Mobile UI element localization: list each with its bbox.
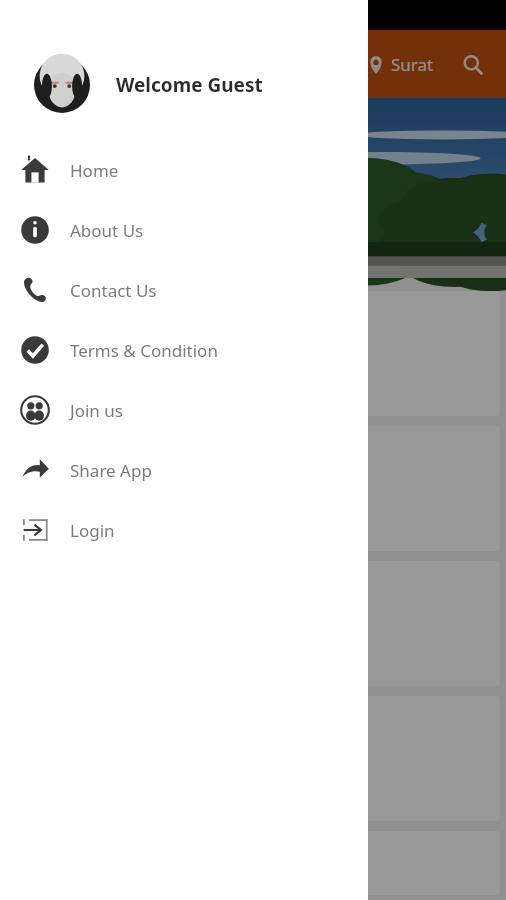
staticText: Login [70,519,115,542]
staticText: Shopping [76,502,162,528]
button[interactable]: Doctor [6,831,500,895]
button[interactable]: About Us [0,200,368,260]
staticText: Home [70,159,119,182]
staticText: Welcome Guest [116,72,263,98]
staticText: Join us [70,399,123,422]
button[interactable]: Shopping [6,426,500,551]
button[interactable]: Search [456,48,490,82]
button[interactable]: Terms & Condition [0,320,368,380]
button[interactable]: Contact Us [0,260,368,320]
button[interactable]: Surat [363,47,438,82]
button[interactable]: Home [0,140,368,200]
button[interactable]: Join us [0,380,368,440]
button[interactable]: Accountant [6,696,500,821]
button[interactable]: Login [0,500,368,560]
button[interactable]: Share App [0,440,368,500]
staticText: Terms & Condition [70,339,218,362]
button[interactable]: IT [6,561,500,686]
staticText: About Us [70,219,144,242]
staticText: Share App [70,459,152,482]
staticText: Surat [391,53,434,76]
button[interactable]: Services [6,291,500,416]
staticText: Contact Us [70,279,157,302]
